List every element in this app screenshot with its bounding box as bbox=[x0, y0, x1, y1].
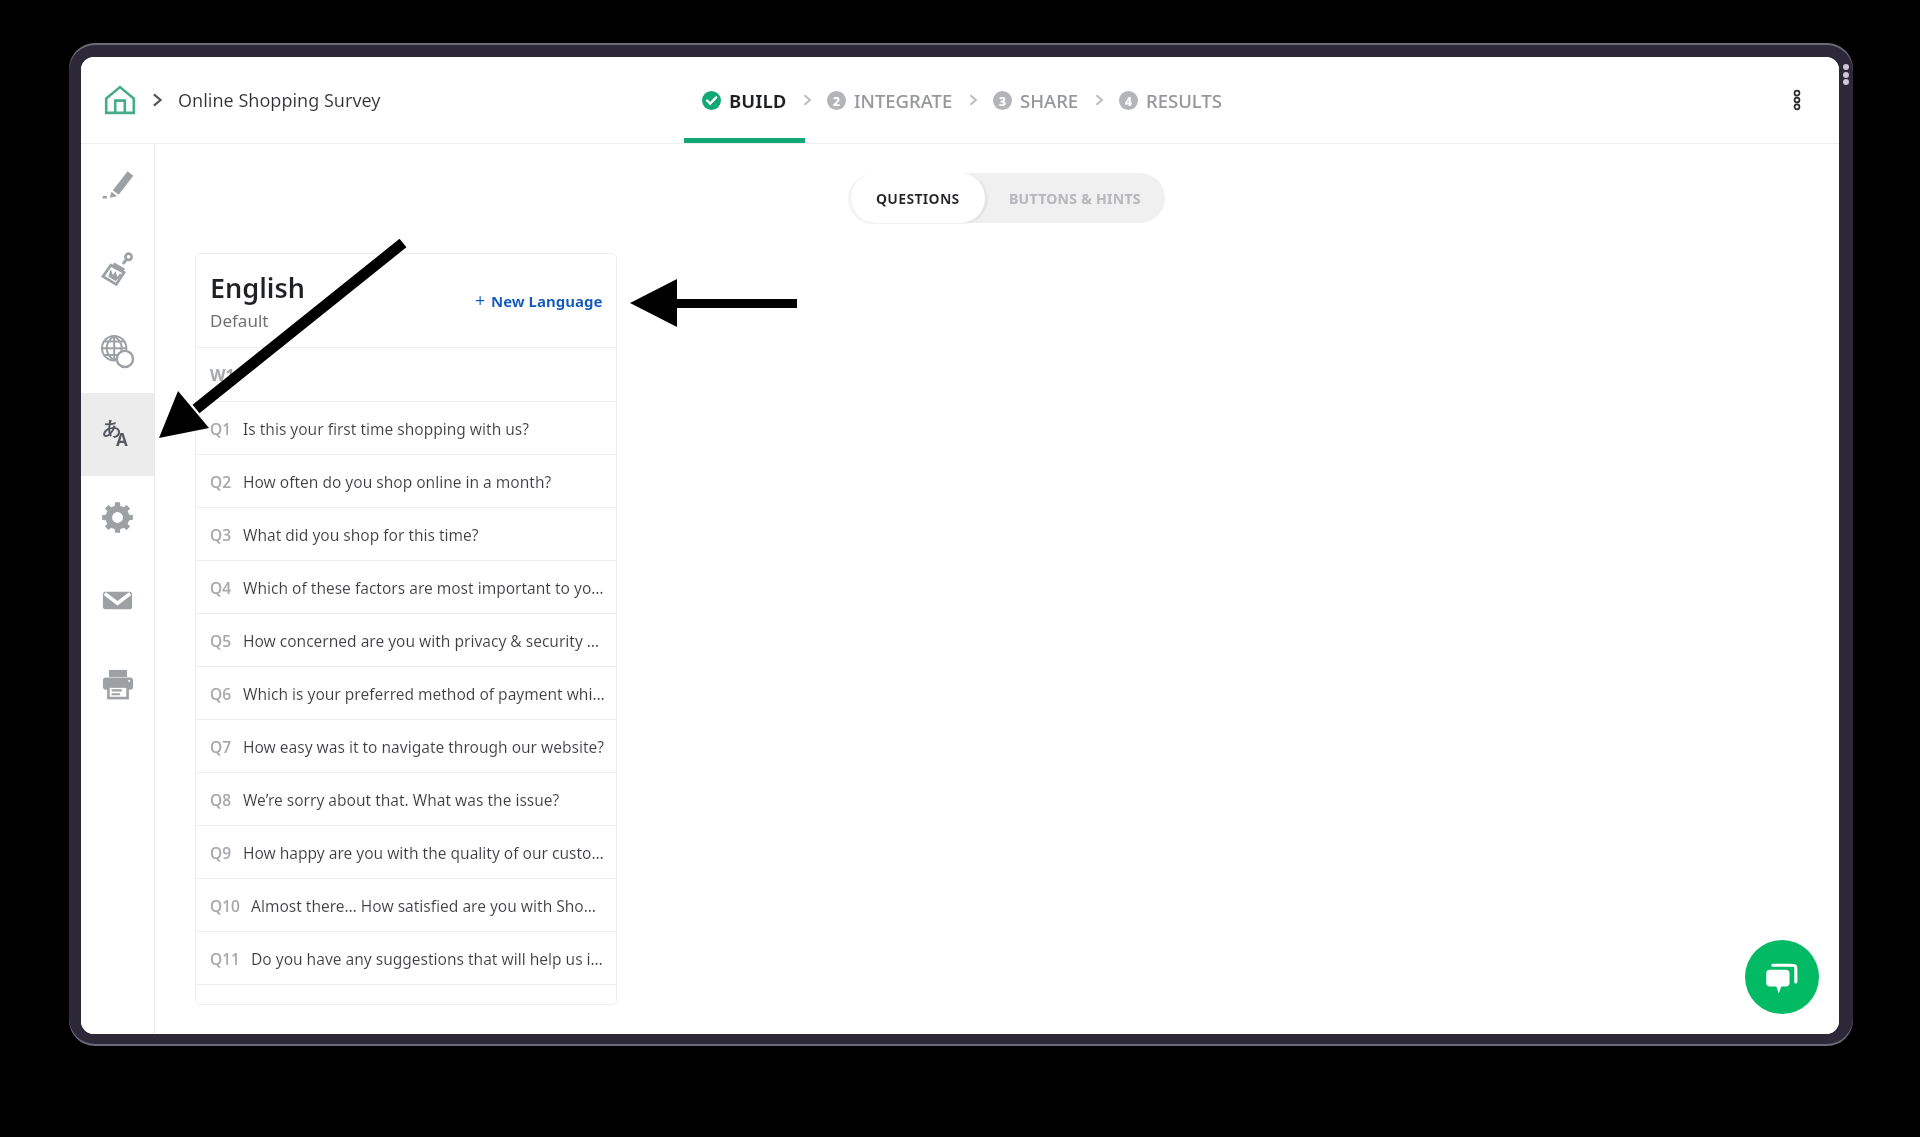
staticText: RESULTS bbox=[1146, 88, 1222, 113]
button[interactable]: Chat bbox=[1745, 940, 1819, 1014]
staticText: あ bbox=[102, 417, 122, 441]
button[interactable]: Q5 bbox=[195, 614, 617, 666]
button[interactable]: Edit bbox=[81, 144, 154, 227]
staticText: Q9 bbox=[210, 842, 232, 863]
button[interactable]: Q10 bbox=[195, 879, 617, 931]
staticText: English bbox=[210, 269, 306, 306]
button[interactable]: Q4 bbox=[195, 561, 617, 613]
staticText: 3 bbox=[999, 93, 1006, 109]
button[interactable]: Print bbox=[81, 642, 154, 725]
staticText: QUESTIONS bbox=[876, 189, 960, 208]
staticText: Q3 bbox=[210, 524, 232, 545]
staticText: How concerned are you with privacy & sec… bbox=[243, 630, 600, 651]
staticText: Which of these factors are most importan… bbox=[243, 577, 604, 598]
staticText: What did you shop for this time? bbox=[243, 524, 479, 545]
button[interactable]: Q11 bbox=[195, 932, 617, 984]
button[interactable]: Q9 bbox=[195, 826, 617, 878]
staticText: 4 bbox=[1125, 93, 1132, 109]
staticText: Q2 bbox=[210, 471, 232, 492]
staticText: We’re sorry about that. What was the iss… bbox=[243, 789, 560, 810]
button[interactable]: Email bbox=[81, 559, 154, 642]
button[interactable]: 3 bbox=[993, 57, 1079, 143]
button[interactable]: Home bbox=[100, 80, 140, 120]
button[interactable]: Translate bbox=[81, 393, 154, 476]
staticText: Is this your first time shopping with us… bbox=[243, 418, 529, 439]
button[interactable]: QUESTIONS bbox=[851, 173, 985, 223]
staticText: BUTTONS & HINTS bbox=[1009, 189, 1141, 208]
staticText: Q7 bbox=[210, 736, 232, 757]
staticText: INTEGRATE bbox=[854, 88, 953, 113]
staticText: Q8 bbox=[210, 789, 232, 810]
staticText: How easy was it to navigate through our … bbox=[243, 736, 604, 757]
staticText: + bbox=[475, 288, 486, 313]
staticText: Q11 bbox=[210, 948, 240, 969]
button[interactable]: Q2 bbox=[195, 455, 617, 507]
staticText: Which is your preferred method of paymen… bbox=[243, 683, 605, 704]
staticText: Q10 bbox=[210, 895, 240, 916]
button[interactable]: Q7 bbox=[195, 720, 617, 772]
staticText: Default bbox=[210, 309, 269, 332]
button[interactable]: Online Shopping Survey bbox=[178, 57, 381, 143]
staticText: Do you have any suggestions that will he… bbox=[251, 948, 603, 969]
button[interactable]: Q1 bbox=[195, 402, 617, 454]
staticText: Q4 bbox=[210, 577, 232, 598]
button[interactable]: Language bbox=[81, 310, 154, 393]
staticText: A bbox=[116, 428, 128, 451]
button[interactable]: Q3 bbox=[195, 508, 617, 560]
staticText: New Language bbox=[491, 291, 603, 311]
button[interactable]: Q8 bbox=[195, 773, 617, 825]
button[interactable]: Settings bbox=[81, 476, 154, 559]
staticText: Almost there… How satisfied are you with… bbox=[251, 895, 596, 916]
staticText: Q5 bbox=[210, 630, 232, 651]
staticText: Online Shopping Survey bbox=[178, 88, 381, 113]
staticText: BUILD bbox=[729, 88, 787, 113]
staticText: Q6 bbox=[210, 683, 232, 704]
staticText: SHARE bbox=[1020, 88, 1079, 113]
button[interactable]: Q6 bbox=[195, 667, 617, 719]
staticText: 2 bbox=[833, 93, 840, 109]
staticText: Q1 bbox=[210, 418, 232, 439]
staticText: W1 bbox=[210, 364, 235, 386]
staticText: How often do you shop online in a month? bbox=[243, 471, 552, 492]
button[interactable]: Theme bbox=[81, 227, 154, 310]
button[interactable]: 2 bbox=[827, 57, 953, 143]
button[interactable]: + bbox=[475, 288, 603, 313]
button[interactable]: BUTTONS & HINTS bbox=[985, 173, 1165, 223]
staticText: How happy are you with the quality of ou… bbox=[243, 842, 604, 863]
button[interactable]: BUILD bbox=[702, 57, 787, 143]
button[interactable]: 4 bbox=[1119, 57, 1222, 143]
button[interactable]: More options bbox=[1780, 83, 1814, 117]
